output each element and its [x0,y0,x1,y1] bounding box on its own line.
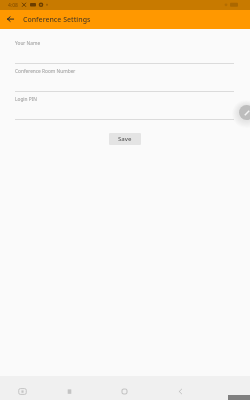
button[interactable]: Back [171,382,189,400]
staticText: 4:08 [8,2,18,9]
button[interactable]: Menu [60,382,78,400]
staticText: Save [118,135,132,143]
button[interactable]: Save [109,133,141,145]
button[interactable]: Back [0,10,21,29]
staticText: Conference Settings [23,15,91,25]
staticText: Login PIN [15,96,37,103]
staticText: Your Name [15,40,41,47]
button[interactable]: Home [115,382,133,400]
button[interactable]: Keyboard [13,382,31,400]
button[interactable]: Edit [239,105,250,120]
staticText: Conference Room Number [15,68,76,75]
